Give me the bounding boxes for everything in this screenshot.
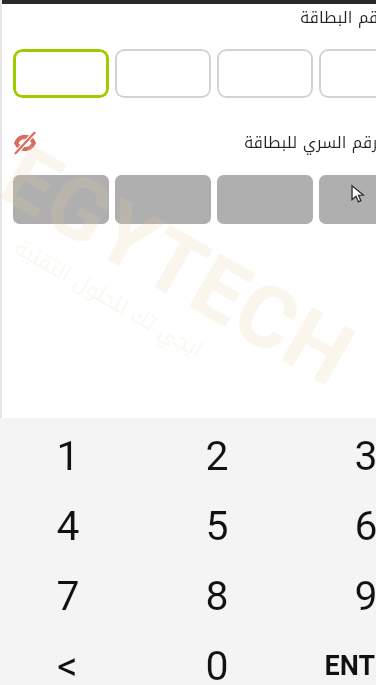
staticText: EGYTECH: [0, 125, 371, 406]
button[interactable]: 0: [142, 631, 291, 685]
staticText: 5: [205, 502, 229, 550]
button[interactable]: <: [0, 631, 142, 685]
staticText: 4: [56, 502, 80, 550]
staticText: ENTER: [324, 650, 376, 682]
button[interactable]: 7: [0, 561, 142, 631]
staticText: 6: [354, 502, 376, 550]
button[interactable]: [319, 175, 376, 224]
button[interactable]: 1: [0, 421, 142, 491]
button[interactable]: [115, 175, 211, 224]
staticText: 3: [354, 432, 376, 480]
button[interactable]: [13, 175, 109, 224]
staticText: 8: [205, 572, 229, 620]
staticText: 1: [56, 432, 80, 480]
staticText: رقم البطاقة: [300, 2, 376, 32]
button[interactable]: 8: [142, 561, 291, 631]
button[interactable]: [13, 49, 109, 98]
button[interactable]: [217, 175, 313, 224]
button[interactable]: 5: [142, 491, 291, 561]
staticText: الرقم السري للبطاقة: [244, 127, 376, 157]
button[interactable]: 4: [0, 491, 142, 561]
staticText: 2: [205, 432, 229, 480]
button[interactable]: 6: [291, 491, 376, 561]
staticText: 0: [205, 642, 229, 685]
staticText: ايجي تك للحلول التقنية: [6, 228, 211, 370]
button[interactable]: [115, 49, 211, 98]
staticText: <: [57, 642, 78, 685]
button[interactable]: 2: [142, 421, 291, 491]
staticText: 9: [354, 572, 376, 620]
button[interactable]: 3: [291, 421, 376, 491]
button[interactable]: ENTER: [291, 631, 376, 685]
button[interactable]: Show PIN: [14, 132, 36, 154]
button[interactable]: 9: [291, 561, 376, 631]
staticText: 7: [56, 572, 80, 620]
button[interactable]: [217, 49, 313, 98]
button[interactable]: [319, 49, 376, 98]
